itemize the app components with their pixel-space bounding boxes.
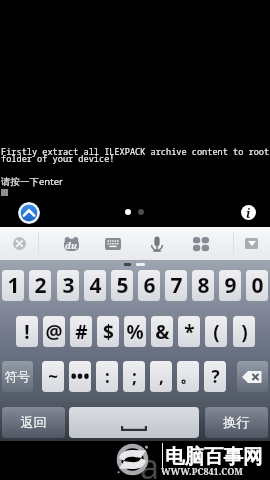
staticText: 返回 [20,414,47,431]
button[interactable]: 6 [138,270,160,301]
staticText: % [126,319,144,345]
staticText: WWW.PC841.COM [161,465,243,477]
staticText: ••• [70,365,90,388]
staticText: Firstly extract all ILEXPACK archive con… [1,146,270,158]
staticText: ~ [48,365,58,388]
button[interactable]: 5 [111,270,133,301]
button[interactable]: 7 [165,270,187,301]
button[interactable]: , [150,361,172,392]
button[interactable]: Baidu input [50,227,92,260]
staticText: $ [103,319,114,345]
button[interactable]: ! [16,316,38,347]
staticText: 换行 [223,414,250,431]
button[interactable]: Info [241,205,256,220]
button[interactable]: : [96,361,118,392]
button[interactable]: ( [205,316,227,347]
button[interactable]: 3 [57,270,79,301]
button[interactable]: 换行 [205,407,268,438]
staticText: ? [211,365,220,388]
staticText: 符号 [5,369,30,385]
button[interactable]: ••• [69,361,91,392]
staticText: : [105,365,110,388]
staticText: 8 [197,271,210,300]
button[interactable]: Delete [237,361,268,392]
staticText: , [159,365,164,388]
button[interactable]: 9 [219,270,241,301]
staticText: 1 [7,271,20,300]
staticText: a [140,443,160,480]
staticText: * [184,319,195,345]
button[interactable]: Voice input [136,227,178,260]
button[interactable]: Scroll up [18,202,40,224]
staticText: 5 [116,271,129,300]
button[interactable]: ; [123,361,145,392]
staticText: 0 [251,271,264,300]
staticText: & [155,319,170,345]
staticText: 请按一下enter [1,175,63,188]
button[interactable]: * [178,316,200,347]
staticText: 7 [170,271,183,300]
button[interactable]: # [70,316,92,347]
staticText: folder of your device! [1,153,115,165]
button[interactable]: Hide keyboard [233,227,270,260]
button[interactable]: 4 [84,270,106,301]
button[interactable]: & [151,316,173,347]
button[interactable]: @ [43,316,65,347]
button[interactable]: 。 [177,361,199,392]
button[interactable]: 符号 [2,361,33,392]
button[interactable]: 返回 [2,407,65,438]
staticText: du [65,239,78,251]
staticText: # [75,319,88,345]
button[interactable]: % [124,316,146,347]
staticText: 4 [89,271,102,300]
staticText: 6 [143,271,156,300]
button[interactable]: 8 [192,270,214,301]
staticText: 2 [34,271,47,300]
staticText: 。 [180,366,197,387]
button[interactable]: ~ [42,361,64,392]
button[interactable]: Close [0,227,38,260]
button[interactable]: 2 [29,270,51,301]
staticText: 电脑百事网 [165,444,263,469]
staticText: ( [213,319,220,345]
button[interactable]: 1 [2,270,24,301]
button[interactable]: Keyboard layout [92,227,134,260]
button[interactable]: Space [69,407,199,438]
staticText: @ [45,319,63,345]
staticText: 9 [224,271,237,300]
button[interactable]: 0 [246,270,268,301]
staticText: 3 [62,271,75,300]
button[interactable]: More [180,227,222,260]
staticText: ; [132,365,137,388]
button[interactable]: ) [233,316,255,347]
staticText: ) [241,319,248,345]
button[interactable]: $ [97,316,119,347]
button[interactable]: ? [204,361,226,392]
staticText: i [246,205,251,220]
staticText: ! [24,319,30,345]
